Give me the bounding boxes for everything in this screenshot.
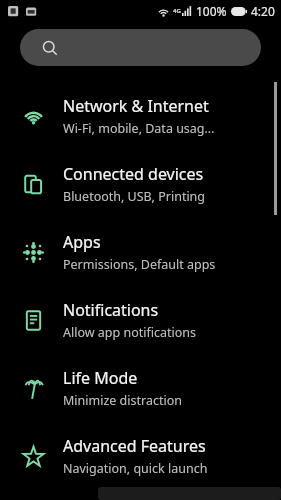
staticText: Life Mode — [63, 367, 138, 389]
staticText: Advanced Features — [63, 435, 206, 457]
staticText: Network & Internet — [63, 95, 209, 117]
button[interactable]: Apps — [0, 218, 281, 286]
button[interactable]: Life Mode — [0, 354, 281, 422]
staticText: Notifications — [63, 299, 159, 321]
staticText: Apps — [63, 231, 101, 253]
button[interactable]: Search settings — [20, 29, 261, 66]
staticText: Connected devices — [63, 163, 204, 185]
button[interactable]: Network & Internet — [0, 82, 281, 150]
staticText: 4G — [173, 7, 181, 15]
staticText: 100% — [196, 3, 227, 19]
staticText: Wi-Fi, mobile, Data usag… — [63, 120, 215, 137]
staticText: Allow app notifications — [63, 324, 197, 341]
button[interactable]: Notifications — [0, 286, 281, 354]
button[interactable]: Advanced Features — [0, 422, 281, 490]
staticText: Navigation, quick launch — [63, 460, 208, 477]
button[interactable]: Connected devices — [0, 150, 281, 218]
staticText: Permissions, Default apps — [63, 256, 216, 273]
staticText: Minimize distraction — [63, 392, 182, 409]
staticText: 4:20 — [251, 3, 275, 19]
staticText: Bluetooth, USB, Printing — [63, 188, 206, 205]
